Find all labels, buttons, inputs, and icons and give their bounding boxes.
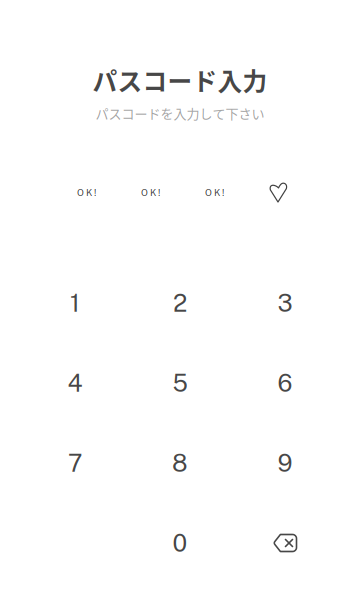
staticText: 3 <box>277 289 292 317</box>
button[interactable]: 3 <box>232 263 337 343</box>
staticText: 2 <box>173 289 187 317</box>
staticText: 6 <box>277 369 292 397</box>
button[interactable]: 4 <box>22 343 127 423</box>
button[interactable]: 2 <box>127 263 232 343</box>
staticText: 8 <box>172 449 188 477</box>
button[interactable]: 9 <box>232 423 337 503</box>
staticText: 4 <box>67 369 82 397</box>
staticText: 1 <box>70 289 80 317</box>
staticText: 0 <box>172 529 187 557</box>
staticText: パスコードを入力して下さい <box>95 103 264 122</box>
button[interactable]: 0 <box>127 503 232 583</box>
button[interactable]: 8 <box>127 423 232 503</box>
button[interactable]: 6 <box>232 343 337 423</box>
button[interactable]: 1 <box>22 263 127 343</box>
staticText: O K ! <box>141 187 160 198</box>
button[interactable]: 5 <box>127 343 232 423</box>
button[interactable]: 7 <box>22 423 127 503</box>
staticText: O K ! <box>205 187 224 198</box>
staticText: 7 <box>68 449 82 477</box>
staticText: 5 <box>172 369 187 397</box>
staticText: 9 <box>277 449 292 477</box>
staticText: O K ! <box>77 187 96 198</box>
staticText: パスコード入力 <box>92 62 267 98</box>
button[interactable]: Delete <box>232 503 337 583</box>
